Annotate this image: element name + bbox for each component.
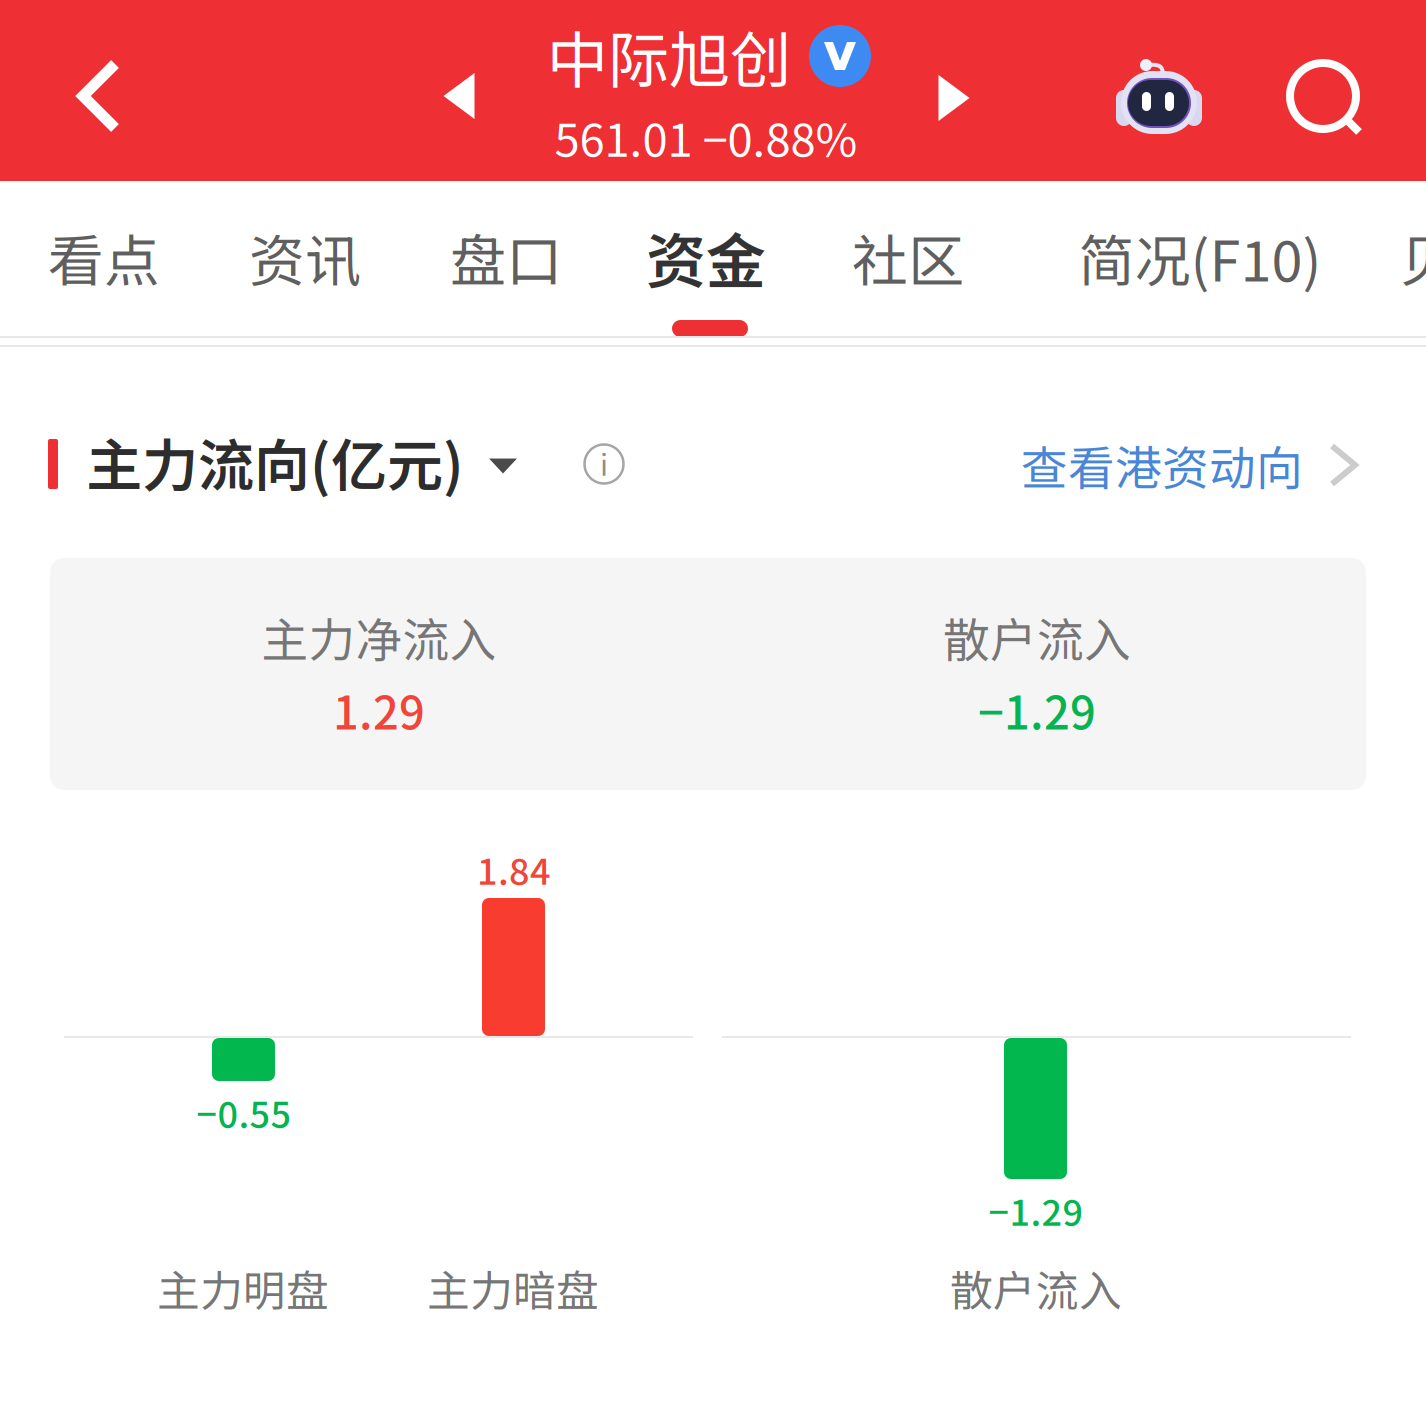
staticText: 资金 [646, 214, 766, 300]
button[interactable]: 社区 [852, 181, 964, 336]
staticText: 主力净流入 [261, 603, 496, 671]
button[interactable]: 资金 [645, 181, 767, 336]
staticText: 散户流入 [950, 1257, 1122, 1319]
staticText: −1.29 [988, 1184, 1083, 1236]
button[interactable]: Next stock [906, 50, 1002, 146]
staticText: 1.84 [477, 843, 551, 895]
staticText: 贝 [1400, 216, 1426, 298]
staticText: 简况(F10) [1078, 216, 1321, 298]
button[interactable]: Back [24, 21, 174, 171]
staticText: 看点 [48, 216, 160, 298]
staticText: 资讯 [249, 216, 361, 298]
button[interactable]: What is this [574, 434, 634, 494]
button[interactable]: 资讯 [249, 181, 361, 336]
button[interactable]: AI assistant [1099, 36, 1219, 156]
staticText: −0.55 [196, 1086, 291, 1138]
staticText: 主力暗盘 [427, 1257, 599, 1319]
staticText: 盘口 [450, 216, 562, 298]
staticText: −1.29 [978, 677, 1096, 743]
button[interactable]: 查看港资动向 [1021, 430, 1359, 500]
staticText: 社区 [852, 216, 964, 298]
staticText: 中际旭创 [547, 12, 791, 100]
button[interactable]: 贝 [1398, 181, 1426, 336]
staticText: 主力流向(亿元) [86, 421, 464, 502]
staticText: 主力明盘 [157, 1257, 329, 1319]
staticText: 561.01 −0.88% [554, 104, 857, 170]
button[interactable]: 看点 [48, 181, 160, 336]
staticText: 1.29 [333, 677, 425, 743]
button[interactable]: Previous stock [411, 48, 507, 144]
button[interactable]: 盘口 [450, 181, 562, 336]
button[interactable]: Change metric [473, 436, 533, 496]
staticText: 散户流入 [943, 603, 1131, 671]
staticText: i [600, 442, 608, 484]
staticText: 查看港资动向 [1021, 431, 1303, 499]
button[interactable]: Search [1271, 44, 1381, 154]
button[interactable]: 简况(F10) [1040, 181, 1360, 336]
